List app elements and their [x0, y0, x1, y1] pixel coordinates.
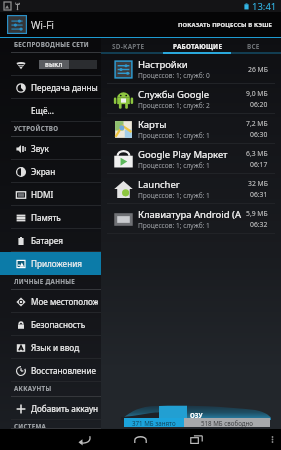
staticText: Google Play Маркет: [138, 148, 228, 161]
staticText: Процессов: 1; служб: 1: [138, 221, 210, 230]
staticText: Звук: [31, 143, 49, 154]
staticText: Экран: [31, 166, 56, 177]
staticText: Приложения: [31, 258, 82, 269]
staticText: Карты: [138, 118, 167, 131]
button[interactable]: ПОКАЗАТЬ ПРОЦЕССЫ В КЭШЕ: [172, 12, 281, 37]
button[interactable]: Google Play Маркет: [101, 144, 281, 174]
staticText: Передача данных: [31, 82, 98, 93]
staticText: Язык и ввод: [31, 342, 80, 353]
button[interactable]: Карты: [101, 114, 281, 144]
staticText: 26 МБ: [248, 65, 268, 74]
button[interactable]: Звук: [0, 137, 101, 160]
button[interactable]: SD-КАРТЕ: [93, 38, 163, 54]
button[interactable]: Launcher: [101, 174, 281, 204]
staticText: HDMI: [31, 189, 54, 200]
button[interactable]: Восстановление: [0, 359, 101, 382]
staticText: 371 МБ занято: [132, 419, 176, 427]
staticText: 5,9 МБ: [246, 209, 268, 218]
button[interactable]: Back: [64, 429, 104, 450]
button[interactable]: Клавиатура Android (A: [101, 204, 281, 234]
button[interactable]: Приложения: [0, 252, 101, 275]
staticText: Настройки: [138, 58, 188, 71]
button[interactable]: Recent apps: [176, 429, 216, 450]
button[interactable]: Язык и ввод: [0, 336, 101, 359]
staticText: SD-КАРТЕ: [112, 42, 145, 51]
button[interactable]: РАБОТАЮЩИЕ: [163, 38, 233, 54]
button[interactable]: Настройки: [101, 54, 281, 84]
staticText: 6,3 МБ: [246, 149, 268, 158]
staticText: 7,2 МБ: [246, 119, 268, 128]
staticText: Launcher: [138, 178, 180, 191]
staticText: Ещё...: [31, 105, 54, 116]
button[interactable]: ВЫКЛ: [0, 53, 101, 76]
button[interactable]: ВСЕ: [233, 38, 273, 54]
staticText: Батарея: [31, 235, 63, 246]
staticText: БЕСПРОВОДНЫЕ СЕТИ: [14, 40, 90, 48]
staticText: 32 МБ: [248, 179, 268, 188]
button[interactable]: Передача данных: [0, 76, 101, 99]
button[interactable]: Безопасность: [0, 313, 101, 336]
staticText: ОЗУ: [190, 411, 203, 419]
staticText: Процессов: 1; служб: 1: [138, 131, 210, 140]
staticText: 06:32: [250, 220, 268, 229]
button[interactable]: Память: [0, 206, 101, 229]
staticText: ЛИЧНЫЕ ДАННЫЕ: [14, 277, 76, 285]
staticText: РАБОТАЮЩИЕ: [173, 42, 223, 51]
staticText: УСТРОЙСТВО: [14, 124, 59, 132]
staticText: Процессов: 1; служб: 1: [138, 191, 210, 200]
staticText: Память: [31, 212, 61, 223]
button[interactable]: Службы Google: [101, 84, 281, 114]
staticText: ВСЕ: [247, 42, 260, 51]
staticText: 06:20: [250, 100, 268, 109]
staticText: Мое местополож: [31, 296, 98, 307]
staticText: ПОКАЗАТЬ ПРОЦЕССЫ В КЭШЕ: [178, 21, 273, 29]
staticText: АККАУНТЫ: [14, 384, 52, 392]
staticText: Клавиатура Android (A: [138, 208, 241, 221]
staticText: 13:41: [252, 0, 277, 12]
staticText: Процессов: 1; служб: 2: [138, 101, 210, 110]
staticText: СИСТЕМА: [14, 422, 47, 429]
button[interactable]: Добавить аккаунт: [0, 397, 101, 420]
staticText: Безопасность: [31, 319, 86, 330]
staticText: 06:31: [250, 190, 268, 199]
button[interactable]: ВЫКЛ: [39, 60, 97, 69]
staticText: Wi-Fi: [31, 18, 54, 32]
staticText: Процессов: 1; служб: 0: [138, 71, 210, 80]
staticText: ВЫКЛ: [45, 61, 63, 69]
button[interactable]: Экран: [0, 160, 101, 183]
button[interactable]: Home: [120, 429, 160, 450]
button[interactable]: Settings: [7, 15, 54, 34]
button[interactable]: Ещё...: [0, 99, 101, 122]
staticText: 06:17: [250, 160, 268, 169]
staticText: 9,0 МБ: [246, 89, 268, 98]
button[interactable]: More options: [263, 429, 281, 450]
staticText: Процессов: 1; служб: 1: [138, 161, 210, 170]
button[interactable]: Мое местополож: [0, 290, 101, 313]
staticText: 06:30: [250, 130, 268, 139]
staticText: Восстановление: [31, 365, 96, 376]
button[interactable]: HDMI: [0, 183, 101, 206]
staticText: Службы Google: [138, 88, 210, 101]
button[interactable]: Батарея: [0, 229, 101, 252]
staticText: 518 МБ свободно: [201, 419, 253, 427]
staticText: Добавить аккаунт: [31, 403, 98, 414]
